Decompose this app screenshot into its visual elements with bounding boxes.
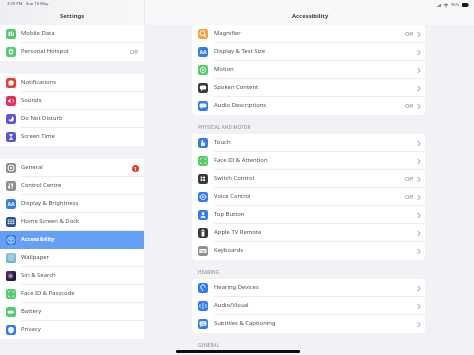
button[interactable]: Audio/Visual	[192, 297, 425, 315]
staticText: Home Screen & Dock	[21, 217, 80, 225]
button[interactable]: Do Not Disturb	[0, 110, 144, 128]
button[interactable]: Top Button	[192, 206, 425, 224]
button[interactable]: Apple TV Remote	[192, 224, 425, 242]
staticText: Off	[405, 175, 414, 182]
staticText: Off	[405, 193, 414, 200]
staticText: 3:59 PM	[7, 1, 23, 7]
button[interactable]: Screen Time	[0, 128, 144, 146]
button[interactable]: Magnifier	[192, 25, 425, 43]
staticText: Sounds	[21, 96, 42, 104]
button[interactable]: Wallpaper	[0, 249, 144, 267]
button[interactable]: Privacy	[0, 321, 144, 339]
staticText: Off	[405, 102, 414, 109]
button[interactable]: Touch	[192, 134, 425, 152]
staticText: GENERAL	[198, 342, 220, 348]
button[interactable]: Control Centre	[0, 177, 144, 195]
button[interactable]: Mobile Data	[0, 25, 144, 43]
staticText: Off	[130, 48, 139, 55]
button[interactable]: Personal Hotspot	[0, 43, 144, 61]
staticText: Audio Descriptions	[214, 101, 267, 109]
staticText: Switch Control	[214, 174, 254, 182]
staticText: Accessibility	[21, 235, 55, 243]
button[interactable]: Display & Text Size	[192, 43, 425, 61]
staticText: Wallpaper	[21, 253, 50, 261]
staticText: Screen Time	[21, 132, 55, 140]
button[interactable]: Audio Descriptions	[192, 97, 425, 115]
staticText: Audio/Visual	[214, 301, 249, 309]
staticText: Spoken Content	[214, 83, 259, 91]
staticText: Personal Hotspot	[21, 47, 69, 55]
staticText: Notifications	[21, 78, 57, 86]
staticText: Mobile Data	[21, 29, 55, 37]
staticText: Face ID & Passcode	[21, 289, 75, 297]
staticText: Off	[405, 30, 414, 37]
button[interactable]: Spoken Content	[192, 79, 425, 97]
staticText: PHYSICAL AND MOTOR	[198, 124, 251, 130]
staticText: HEARING	[198, 269, 220, 275]
button[interactable]: Switch Control	[192, 170, 425, 188]
staticText: Battery	[21, 307, 42, 315]
button[interactable]: Accessibility	[0, 231, 144, 249]
staticText: Privacy	[21, 325, 41, 333]
staticText: Hearing Devices	[214, 283, 259, 291]
staticText: Top Button	[214, 210, 245, 218]
staticText: Voice Control	[214, 192, 251, 200]
staticText: 96%	[451, 2, 460, 8]
button[interactable]: Motion	[192, 61, 425, 79]
staticText: Control Centre	[21, 181, 62, 189]
staticText: Sun 10 May	[26, 1, 49, 7]
button[interactable]: Home Screen & Dock	[0, 213, 144, 231]
button[interactable]: Siri & Search	[0, 267, 144, 285]
staticText: Keyboards	[214, 246, 244, 254]
staticText: 1	[134, 166, 137, 172]
button[interactable]: Battery	[0, 303, 144, 321]
button[interactable]: Keyboards	[192, 242, 425, 260]
staticText: Display & Brightness	[21, 199, 79, 207]
staticText: Magnifier	[214, 29, 241, 37]
staticText: General	[21, 163, 43, 171]
button[interactable]: General	[0, 159, 144, 177]
button[interactable]: Hearing Devices	[192, 279, 425, 297]
staticText: Do Not Disturb	[21, 114, 63, 122]
staticText: Face ID & Attention	[214, 156, 268, 164]
staticText: Display & Text Size	[214, 47, 266, 55]
staticText: Accessibility	[292, 12, 329, 20]
button[interactable]: Face ID & Attention	[192, 152, 425, 170]
staticText: Touch	[214, 138, 231, 146]
button[interactable]: Sounds	[0, 92, 144, 110]
staticText: Motion	[214, 65, 234, 73]
button[interactable]: Notifications	[0, 74, 144, 92]
button[interactable]: Voice Control	[192, 188, 425, 206]
staticText: Apple TV Remote	[214, 228, 262, 236]
button[interactable]: Face ID & Passcode	[0, 285, 144, 303]
button[interactable]: Subtitles & Captioning	[192, 315, 425, 333]
button[interactable]: Display & Brightness	[0, 195, 144, 213]
staticText: Subtitles & Captioning	[214, 319, 276, 327]
staticText: Siri & Search	[21, 271, 56, 279]
staticText: Settings	[60, 12, 85, 20]
